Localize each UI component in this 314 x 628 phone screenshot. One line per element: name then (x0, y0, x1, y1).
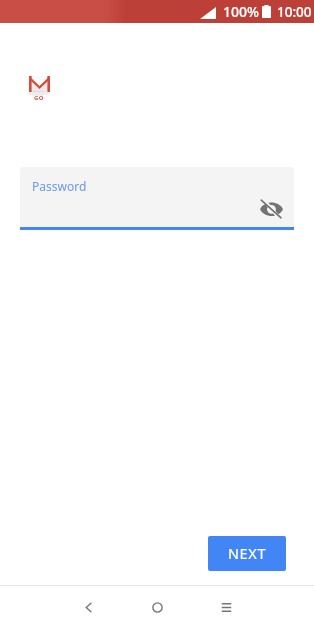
button[interactable]: NEXT (208, 536, 286, 571)
button[interactable]: Back (64, 586, 112, 628)
staticText: GO (34, 94, 44, 102)
button[interactable]: Show password (251, 191, 291, 227)
staticText: 100% (223, 2, 259, 21)
staticText: 10:00 (277, 3, 312, 21)
staticText: Password (32, 178, 87, 194)
button[interactable]: Password (20, 167, 294, 227)
button[interactable]: Home (133, 586, 181, 628)
button[interactable]: Recent apps (202, 586, 250, 628)
staticText: NEXT (228, 543, 267, 563)
